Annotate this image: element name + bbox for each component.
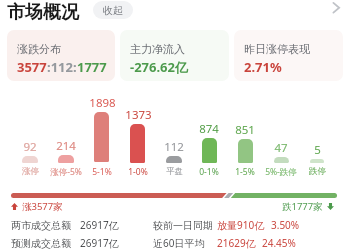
staticText: 跌1777家 <box>282 200 323 213</box>
staticText: 两市成交总额 <box>11 219 71 232</box>
staticText: 主力净流入 <box>130 42 185 56</box>
staticText: 26917亿 <box>80 218 119 232</box>
button[interactable]: 市场概况 <box>7 1 79 24</box>
staticText: -276.62亿 <box>130 58 188 76</box>
staticText: 近60日平均 <box>153 236 205 250</box>
staticText: 26917亿 <box>80 236 119 250</box>
button[interactable]: 近60日平均 <box>153 236 296 250</box>
staticText: 市场概况 <box>7 1 79 24</box>
staticText: 92 <box>23 139 37 155</box>
staticText: 1373 <box>125 107 152 123</box>
staticText: 昨日涨停表现 <box>244 42 310 56</box>
staticText: :112: <box>47 58 77 76</box>
staticText: 1777 <box>77 58 107 76</box>
staticText: 平盘 <box>166 166 183 177</box>
staticText: 涨停 <box>22 166 39 177</box>
staticText: 收起 <box>103 4 123 17</box>
button[interactable]: 跌1777家 <box>282 200 334 213</box>
staticText: 5-1% <box>92 166 112 178</box>
staticText: 1-5% <box>235 166 255 178</box>
staticText: 涨跌分布 <box>17 42 61 56</box>
staticText: 851 <box>235 122 255 138</box>
staticText: 跌停 <box>309 166 326 177</box>
staticText: 0-1% <box>199 166 219 178</box>
staticText: 预测成交总额 <box>11 237 71 250</box>
staticText: 涨停-5% <box>50 166 82 178</box>
staticText: 涨3577家 <box>22 200 63 213</box>
staticText: 24.45% <box>262 236 296 250</box>
button[interactable]: 昨日涨停表现 <box>234 30 343 81</box>
button[interactable]: 较前一日同期 <box>153 218 300 232</box>
button[interactable]: 收起 <box>93 1 133 19</box>
staticText: 1898 <box>89 95 116 111</box>
staticText: 2.71% <box>244 58 282 76</box>
staticText: 5 <box>314 142 321 158</box>
staticText: 47 <box>274 140 288 156</box>
staticText: 5%-跌停 <box>265 166 297 178</box>
staticText: 3.50% <box>271 218 300 232</box>
staticText: 放量910亿 <box>217 218 265 232</box>
staticText: 较前一日同期 <box>153 219 213 232</box>
staticText: 3577 <box>17 58 47 76</box>
staticText: 112 <box>164 139 184 155</box>
button[interactable]: 涨3577家 <box>11 200 63 213</box>
button[interactable]: More <box>328 0 346 18</box>
staticText: 214 <box>56 138 76 154</box>
button[interactable]: 主力净流入 <box>120 30 229 81</box>
staticText: 1-0% <box>128 166 148 178</box>
button[interactable]: 涨跌分布 <box>7 30 115 81</box>
staticText: 874 <box>199 121 219 137</box>
staticText: 21629亿 <box>217 236 256 250</box>
button[interactable]: 两市成交总额 <box>11 218 119 232</box>
button[interactable]: 预测成交总额 <box>11 236 119 250</box>
